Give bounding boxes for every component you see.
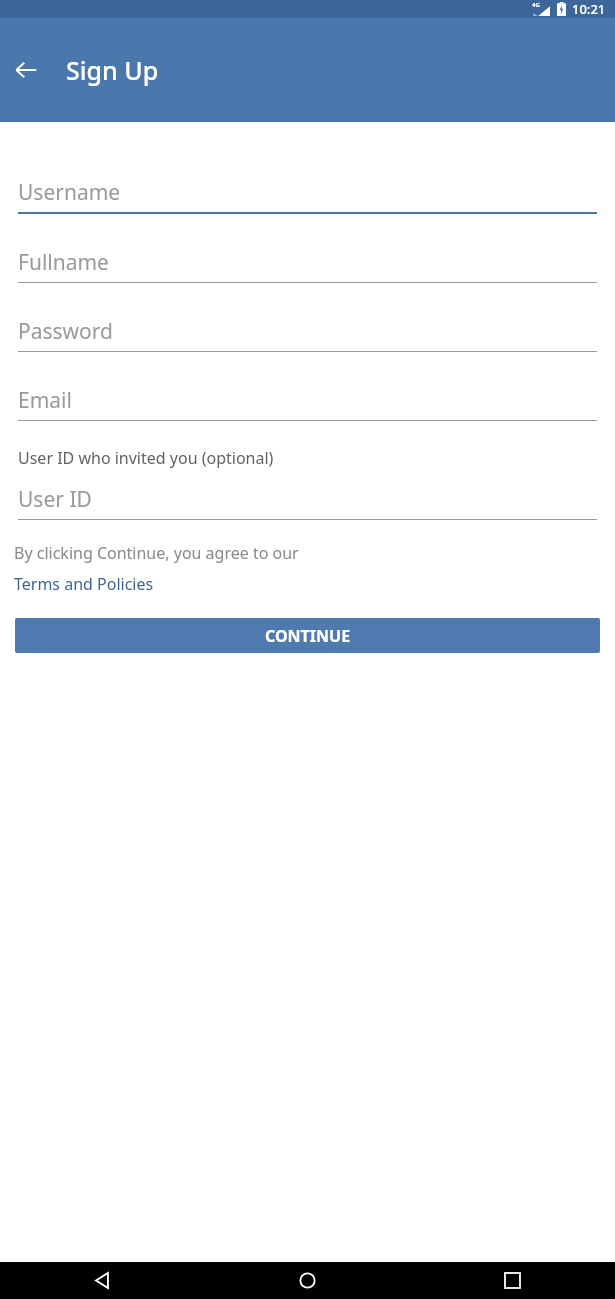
staticText: By clicking Continue, you agree to our [14, 542, 299, 564]
staticText: User ID who invited you (optional) [18, 447, 274, 469]
button[interactable]: Fullname [0, 248, 615, 283]
button[interactable]: Password [0, 317, 615, 352]
staticText: User ID [18, 485, 92, 514]
button[interactable]: Home [205, 1262, 410, 1299]
button[interactable]: Back [9, 53, 43, 87]
staticText: Terms and Policies [14, 573, 154, 595]
staticText: 10:21 [572, 0, 606, 18]
button[interactable]: Back [0, 1262, 205, 1299]
button[interactable]: Email [0, 386, 615, 421]
staticText: 4G [532, 1, 540, 9]
staticText: Fullname [18, 248, 109, 277]
staticText: CONTINUE [265, 625, 351, 647]
button[interactable]: User ID [0, 485, 615, 520]
button[interactable]: Username [0, 178, 615, 214]
staticText: Sign Up [66, 53, 159, 87]
staticText: Email [18, 386, 72, 415]
staticText: Username [18, 178, 121, 207]
staticText: Password [18, 317, 113, 346]
button[interactable]: Terms and Policies [14, 572, 154, 596]
button[interactable]: CONTINUE [15, 618, 600, 653]
button[interactable]: Recent apps [410, 1262, 615, 1299]
